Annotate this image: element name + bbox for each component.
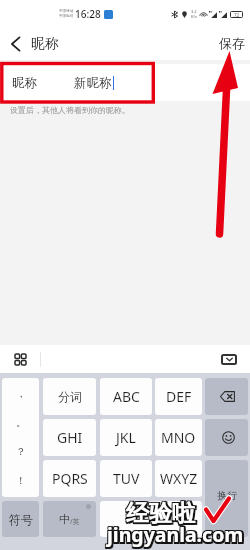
staticText: 分词 bbox=[58, 389, 82, 404]
button[interactable]: ABC bbox=[100, 378, 152, 415]
staticText: 符号 bbox=[9, 512, 33, 527]
staticText: 经验啦 bbox=[128, 499, 197, 528]
staticText: jingyanla.com bbox=[107, 523, 244, 550]
staticText: jingyanla.com bbox=[106, 523, 243, 550]
staticText: 经验啦 bbox=[128, 501, 197, 530]
button[interactable]: DEF bbox=[155, 378, 202, 415]
button[interactable]: 换行 bbox=[205, 460, 248, 537]
staticText: 中 bbox=[59, 512, 70, 526]
staticText: ！ bbox=[16, 474, 26, 487]
staticText: 昵称 bbox=[31, 35, 59, 53]
button[interactable]: MNO bbox=[155, 419, 202, 456]
staticText: 经验啦 bbox=[126, 498, 195, 527]
staticText: 保存 bbox=[219, 35, 245, 51]
staticText: 经验啦 bbox=[126, 499, 195, 528]
button[interactable]: Back bbox=[0, 28, 31, 60]
button[interactable]: Emoji bbox=[205, 419, 248, 456]
staticText: MNO bbox=[161, 428, 196, 447]
staticText: TUV bbox=[113, 469, 140, 488]
staticText: 设置后，其他人将看到你的昵称。 bbox=[10, 105, 130, 115]
staticText: 经验啦 bbox=[125, 501, 194, 530]
button[interactable]: Hide keyboard bbox=[208, 345, 250, 373]
staticText: jingyanla.com bbox=[107, 521, 244, 548]
staticText: 经验啦 bbox=[125, 499, 194, 528]
button[interactable] bbox=[100, 501, 202, 537]
staticText: 72 bbox=[234, 12, 240, 18]
staticText: DEF bbox=[166, 387, 192, 406]
button[interactable]: PQRS bbox=[43, 460, 96, 497]
staticText: 16:28 bbox=[75, 7, 101, 21]
staticText: jingyanla.com bbox=[109, 523, 246, 550]
staticText: 换行 bbox=[217, 489, 237, 502]
button[interactable]: GHI bbox=[43, 419, 96, 456]
staticText: 新昵称 bbox=[74, 75, 112, 91]
staticText: 中国移动 bbox=[59, 9, 74, 14]
button[interactable]: 保存 bbox=[219, 28, 245, 60]
button[interactable]: WXYZ bbox=[155, 460, 202, 497]
staticText: PQRS bbox=[52, 469, 88, 488]
staticText: jingyanla.com bbox=[107, 520, 244, 547]
staticText: jingyanla.com bbox=[109, 520, 246, 547]
staticText: 。 bbox=[16, 416, 26, 429]
staticText: JKL bbox=[116, 428, 136, 447]
staticText: 昵称 bbox=[12, 75, 37, 91]
staticText: ABC bbox=[113, 387, 140, 406]
staticText: 经验啦 bbox=[125, 498, 194, 527]
button[interactable]: 中 bbox=[43, 501, 96, 537]
button[interactable]: TUV bbox=[100, 460, 152, 497]
staticText: jingyanla.com bbox=[106, 521, 243, 548]
staticText: 3.2 bbox=[191, 9, 197, 14]
staticText: WXYZ bbox=[160, 469, 198, 488]
staticText: jingyanla.com bbox=[109, 521, 246, 548]
staticText: GHI bbox=[57, 428, 83, 447]
button[interactable]: Keyboard layout bbox=[0, 345, 40, 373]
staticText: ？ bbox=[16, 445, 26, 458]
staticText: 中国电信 bbox=[59, 14, 74, 19]
staticText: ， bbox=[16, 387, 26, 400]
button[interactable]: ， bbox=[2, 378, 39, 497]
button[interactable]: 分词 bbox=[43, 378, 96, 415]
button[interactable]: JKL bbox=[100, 419, 152, 456]
button[interactable]: Backspace bbox=[205, 378, 248, 415]
staticText: 经验啦 bbox=[128, 498, 197, 527]
staticText: /英 bbox=[70, 517, 80, 527]
button[interactable]: 符号 bbox=[2, 501, 39, 537]
staticText: 经验啦 bbox=[126, 501, 195, 530]
staticText: jingyanla.com bbox=[106, 520, 243, 547]
staticText: K/s bbox=[191, 14, 197, 19]
